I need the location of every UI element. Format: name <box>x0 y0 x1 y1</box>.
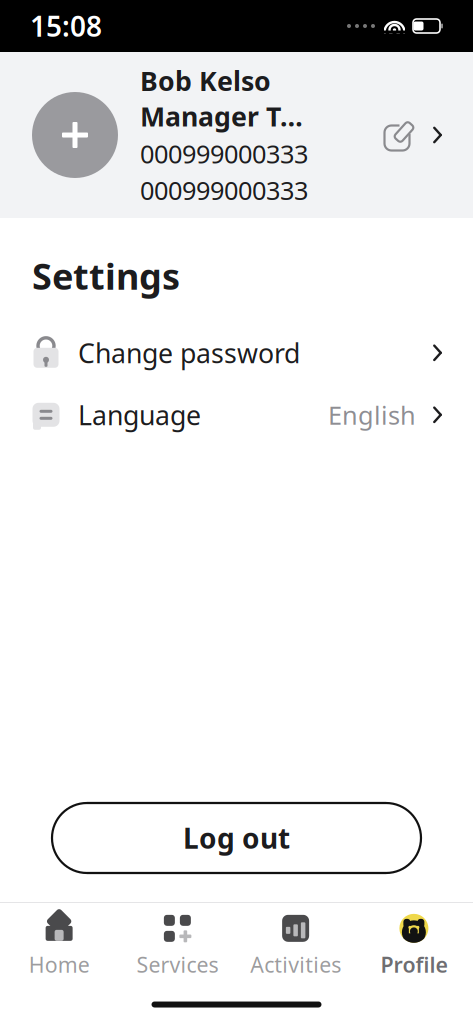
button[interactable]: Edit profile <box>0 52 473 218</box>
button[interactable]: Home <box>0 899 118 989</box>
staticText: Log out <box>183 819 290 857</box>
staticText: Bob Kelso Manager T… <box>140 63 303 134</box>
staticText: 000999000333 <box>140 173 308 207</box>
button[interactable]: Log out <box>52 803 421 873</box>
button[interactable]: Language <box>0 384 473 446</box>
staticText: Change password <box>78 335 300 370</box>
staticText: Profile <box>380 950 447 979</box>
button[interactable]: Activities <box>236 899 355 989</box>
staticText: Activities <box>250 950 341 979</box>
staticText: 000999000333 <box>140 137 308 170</box>
staticText: Home <box>29 950 90 979</box>
staticText: Language <box>78 397 201 432</box>
staticText: Settings <box>32 252 180 300</box>
button[interactable]: Change password <box>0 322 473 384</box>
button[interactable]: Services <box>118 899 236 989</box>
button[interactable]: Profile <box>355 899 473 989</box>
staticText: 15:08 <box>30 7 102 45</box>
staticText: Services <box>136 950 218 979</box>
staticText: English <box>328 398 416 432</box>
